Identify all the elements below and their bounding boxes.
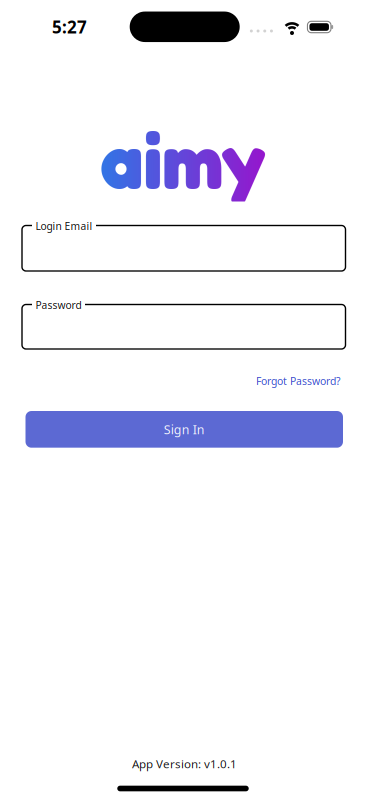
staticText: Login Email — [35, 219, 92, 233]
staticText: Sign In — [164, 421, 205, 438]
button[interactable]: Password — [22, 304, 345, 349]
button[interactable]: Sign In — [25, 411, 343, 448]
button[interactable]: Forgot Password? — [256, 374, 341, 388]
staticText: 5:27 — [52, 15, 87, 39]
button[interactable]: Login Email — [22, 225, 345, 271]
staticText: Password — [35, 298, 81, 312]
staticText: Forgot Password? — [256, 374, 341, 388]
staticText: App Version: v1.0.1 — [132, 756, 237, 772]
